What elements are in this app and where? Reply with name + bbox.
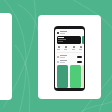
button[interactable]: Quick action [57,46,60,50]
button[interactable] [57,60,82,63]
button[interactable] [57,36,81,44]
button[interactable] [57,31,82,34]
button[interactable]: Quick action [79,46,82,50]
button[interactable]: Quick action [55,29,84,88]
button[interactable] [57,65,68,88]
button[interactable] [70,65,81,88]
button[interactable] [57,55,82,58]
button[interactable]: Quick action [72,46,75,50]
button[interactable]: Quick action [64,46,67,50]
